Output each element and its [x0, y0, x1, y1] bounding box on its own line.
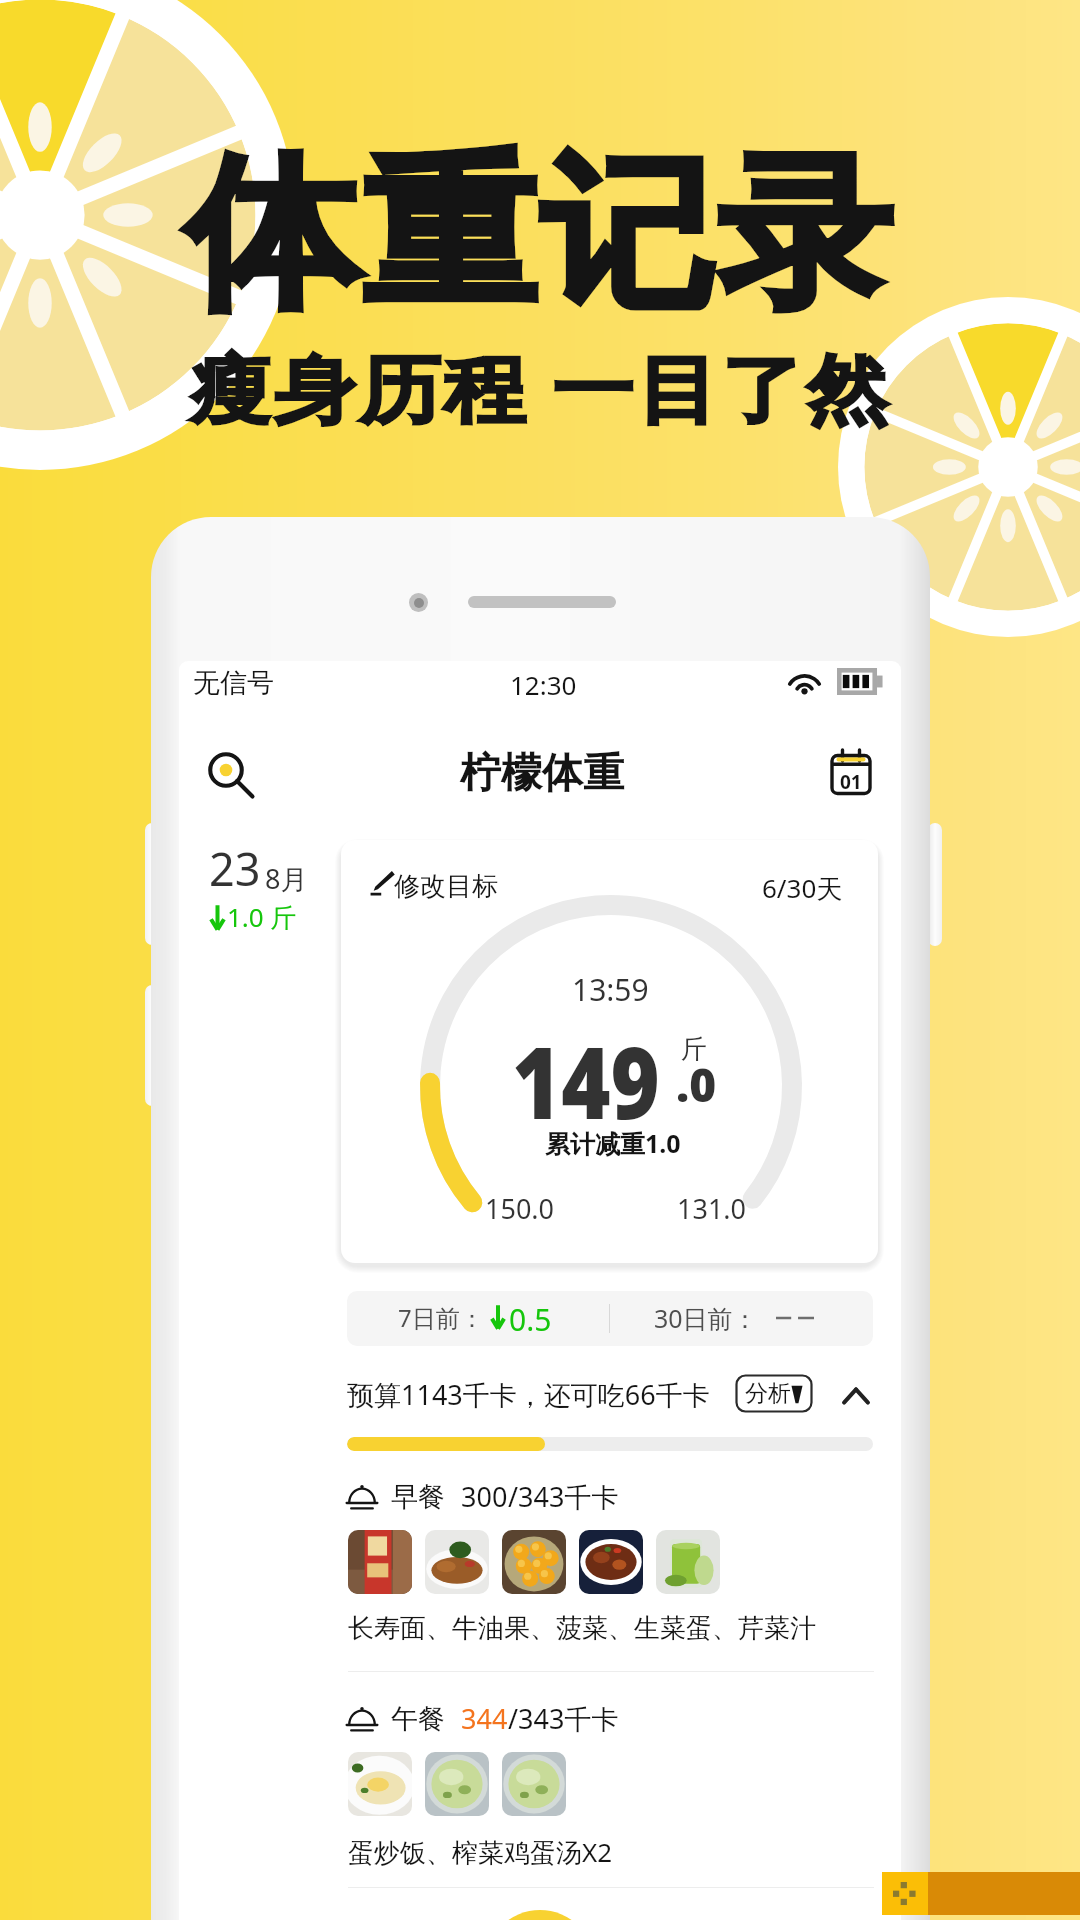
staticText: 131.0	[677, 1190, 747, 1227]
staticText: 斤	[681, 1033, 707, 1066]
staticText: 300	[461, 1478, 508, 1515]
staticText: 1.0 斤	[227, 899, 297, 935]
staticText: 累计减重1.0	[545, 1126, 681, 1160]
staticText: 344	[461, 1700, 508, 1737]
button[interactable]: Search	[204, 748, 258, 802]
button[interactable]: 修改目标	[341, 840, 878, 1263]
staticText: 预算1143千卡，还可吃66千卡	[347, 1376, 710, 1413]
staticText: 8月	[265, 860, 308, 897]
staticText: 分析	[745, 1379, 791, 1408]
button[interactable]	[425, 1530, 489, 1594]
staticText: 6/30天	[762, 870, 843, 906]
staticText: 149	[512, 1013, 661, 1148]
staticText: 体重记录	[46, 132, 1034, 339]
staticText: 午餐	[391, 1702, 445, 1736]
staticText: 12:30	[510, 667, 577, 702]
staticText: 无信号	[193, 666, 274, 700]
button[interactable]: Collapse	[843, 1385, 869, 1407]
staticText: 0.5	[509, 1299, 552, 1340]
button[interactable]	[348, 1752, 412, 1816]
button[interactable]	[502, 1530, 566, 1594]
staticText: 早餐	[391, 1480, 445, 1514]
staticText: 蛋炒饭、榨菜鸡蛋汤X2	[348, 1834, 613, 1870]
staticText: 修改目标	[394, 870, 498, 903]
button[interactable]	[656, 1530, 720, 1594]
staticText: 30日前：	[654, 1301, 758, 1335]
button[interactable]	[425, 1752, 489, 1816]
staticText: 23	[209, 838, 261, 899]
staticText: 01	[840, 769, 862, 795]
staticText: /343千卡	[508, 1478, 619, 1515]
button[interactable]	[579, 1530, 643, 1594]
staticText: /343千卡	[508, 1700, 619, 1737]
staticText: 7日前：	[398, 1301, 484, 1334]
staticText: 13:59	[572, 969, 649, 1010]
staticText: 瘦身历程 一目了然	[8, 336, 1072, 437]
staticText: 长寿面、牛油果、菠菜、生菜蛋、芹菜汁	[348, 1612, 816, 1645]
button[interactable]: Calendar	[824, 746, 878, 800]
staticText: 150.0	[485, 1190, 555, 1227]
staticText: .0	[676, 1053, 717, 1116]
button[interactable]	[348, 1530, 412, 1594]
button[interactable]: 分析	[735, 1374, 813, 1413]
button[interactable]: 7日前：	[347, 1291, 873, 1346]
button[interactable]: Add record	[485, 1910, 595, 1920]
staticText: 柠檬体重	[460, 748, 624, 800]
button[interactable]	[502, 1752, 566, 1816]
